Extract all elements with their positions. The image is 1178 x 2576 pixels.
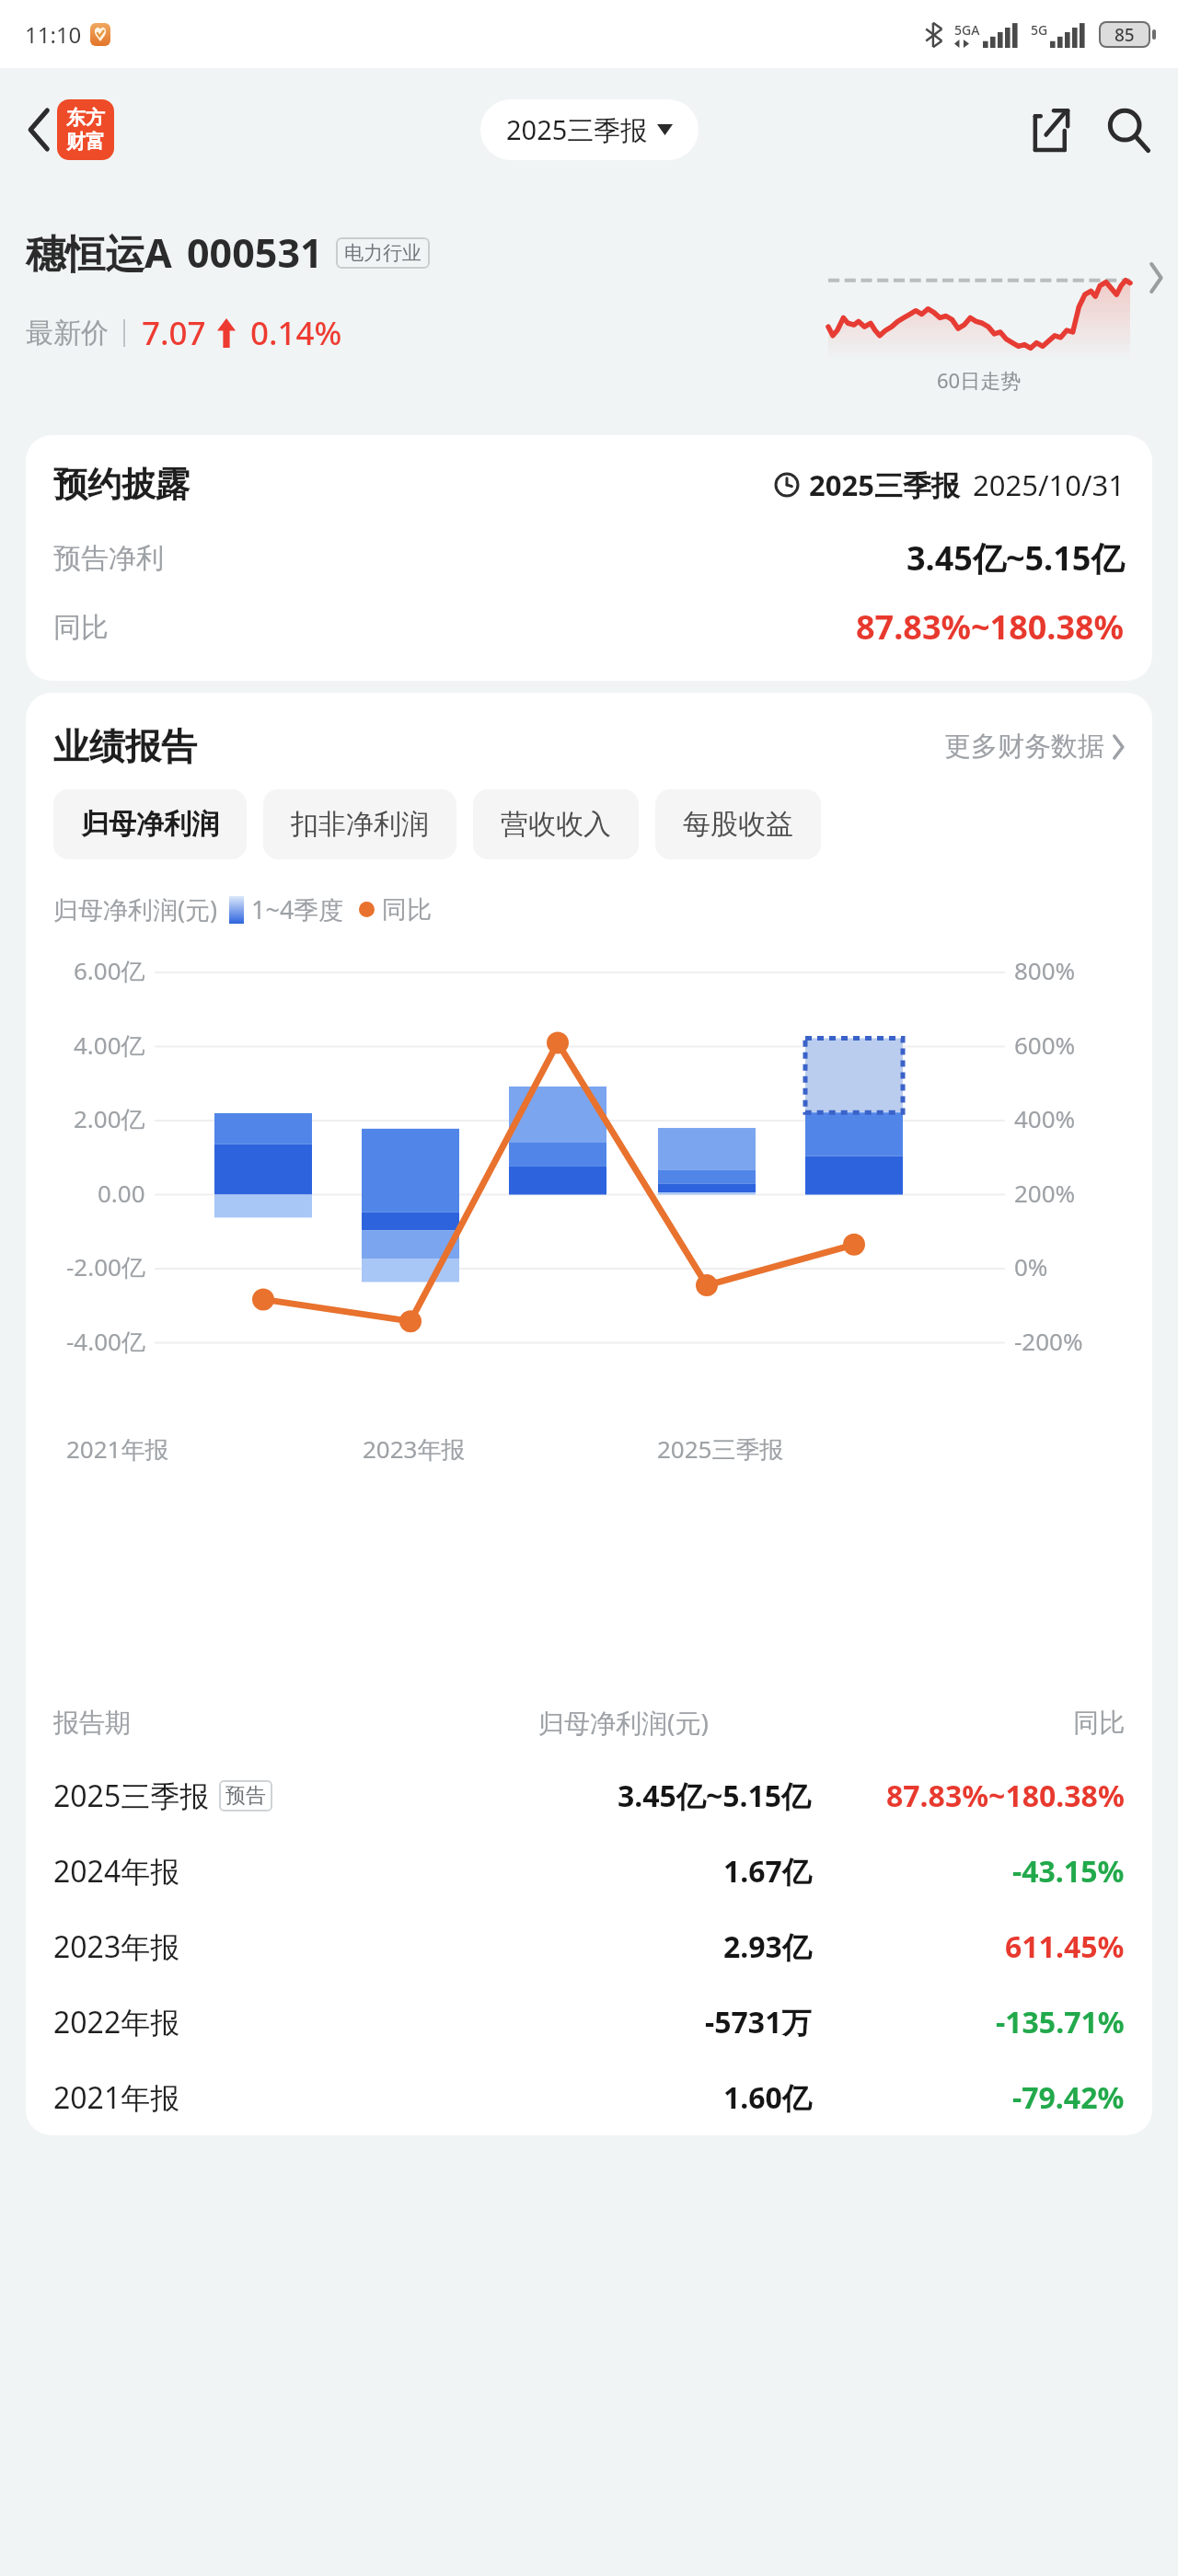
staticText: 预告净利 — [53, 541, 164, 576]
staticText: 1~4季度 — [251, 892, 344, 926]
staticText: 东方 — [66, 106, 105, 130]
staticText: -135.71% — [996, 2002, 1125, 2042]
staticText: 0.00 — [98, 1177, 145, 1209]
button[interactable]: Share — [1023, 98, 1084, 162]
staticText: 600% — [1014, 1029, 1076, 1061]
staticText: 最新价 — [26, 316, 109, 351]
staticText: 87.83%~180.38% — [886, 1776, 1125, 1816]
staticText: 2025三季报 — [53, 1776, 210, 1816]
button[interactable]: 更多财务数据 — [939, 724, 1130, 769]
staticText: 2025三季报 — [809, 466, 960, 504]
staticText: 11:10 — [25, 19, 82, 50]
staticText: 400% — [1014, 1102, 1076, 1134]
staticText: 3.45亿~5.15亿 — [618, 1776, 812, 1816]
staticText: 归母净利润 — [81, 807, 219, 842]
staticText: 预告 — [225, 1783, 266, 1809]
staticText: 归母净利润(元) — [53, 892, 218, 926]
staticText: -5731万 — [705, 2002, 812, 2042]
button[interactable]: 扣非净利润 — [263, 789, 456, 859]
staticText: 2021年报 — [53, 2077, 180, 2118]
staticText: 电力行业 — [344, 241, 422, 265]
button[interactable]: 穗恒运A — [0, 190, 1178, 435]
staticText: 财富 — [66, 130, 105, 154]
staticText: 3.45亿~5.15亿 — [907, 535, 1125, 581]
staticText: 报告期 — [53, 1707, 131, 1739]
staticText: 7.07 — [142, 311, 206, 355]
staticText: 2024年报 — [53, 1851, 180, 1892]
button[interactable]: 2025三季报 — [480, 99, 699, 160]
staticText: -4.00亿 — [66, 1325, 145, 1358]
staticText: 2021年报 — [66, 1432, 169, 1466]
staticText: 预约披露 — [53, 463, 190, 506]
staticText: 2.93亿 — [723, 1926, 812, 1967]
staticText: 4.00亿 — [74, 1029, 145, 1062]
staticText: 87.83%~180.38% — [856, 604, 1125, 650]
staticText: 2.00亿 — [74, 1102, 145, 1135]
staticText: 0% — [1014, 1250, 1048, 1282]
staticText: 85 — [1114, 23, 1135, 46]
staticText: 2025三季报 — [657, 1432, 784, 1466]
staticText: 5G — [1031, 21, 1048, 39]
staticText: 1.67亿 — [723, 1851, 812, 1892]
staticText: -2.00亿 — [66, 1250, 145, 1283]
staticText: -200% — [1014, 1325, 1083, 1357]
staticText: 业绩报告 — [53, 724, 197, 769]
staticText: 2022年报 — [53, 2002, 180, 2042]
staticText: 2023年报 — [363, 1432, 466, 1466]
button[interactable]: Back — [20, 103, 59, 156]
staticText: -43.15% — [1012, 1851, 1125, 1892]
staticText: 200% — [1014, 1177, 1076, 1209]
staticText: 2025/10/31 — [973, 466, 1125, 504]
button[interactable]: 2022年报 — [53, 1984, 1125, 2060]
staticText: 扣非净利润 — [291, 807, 429, 842]
staticText: 穗恒运A — [26, 225, 172, 280]
staticText: 611.45% — [1005, 1926, 1125, 1967]
button[interactable]: 东方 — [57, 99, 114, 160]
button[interactable]: 预约披露 — [26, 435, 1152, 681]
staticText: 60日走势 — [937, 366, 1022, 394]
staticText: 更多财务数据 — [944, 730, 1104, 764]
staticText: 800% — [1014, 954, 1076, 986]
staticText: -79.42% — [1012, 2077, 1125, 2118]
staticText: 2023年报 — [53, 1926, 180, 1967]
staticText: 同比 — [382, 894, 432, 926]
staticText: 归母净利润(元) — [538, 1705, 709, 1740]
button[interactable]: 2025三季报 — [53, 1758, 1125, 1834]
button[interactable]: 2021年报 — [53, 2060, 1125, 2135]
staticText: 6.00亿 — [74, 954, 145, 987]
button[interactable]: 2024年报 — [53, 1834, 1125, 1909]
button[interactable]: 2023年报 — [53, 1909, 1125, 1984]
staticText: 2025三季报 — [506, 111, 648, 148]
staticText: 营收收入 — [501, 807, 611, 842]
staticText: 1.60亿 — [723, 2077, 812, 2118]
staticText: 每股收益 — [683, 807, 793, 842]
staticText: 同比 — [1073, 1707, 1125, 1739]
button[interactable]: Search — [1097, 98, 1160, 161]
staticText: 000531 — [187, 225, 323, 280]
button[interactable]: 归母净利润 — [53, 789, 247, 859]
button[interactable]: 营收收入 — [473, 789, 639, 859]
staticText: 同比 — [53, 610, 109, 645]
staticText: 0.14% — [250, 311, 342, 355]
staticText: 5GA — [954, 21, 980, 39]
button[interactable]: 每股收益 — [655, 789, 821, 859]
